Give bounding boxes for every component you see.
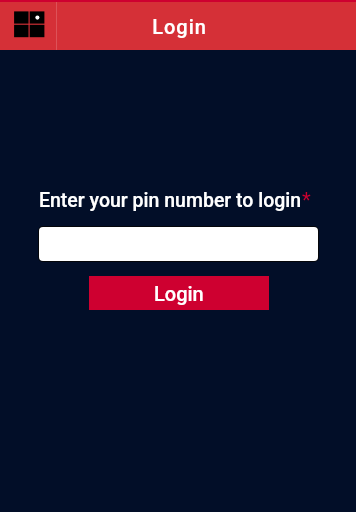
button[interactable]: Pin number input field xyxy=(39,227,318,261)
staticText: Enter your pin number to login xyxy=(39,189,302,212)
staticText: Login xyxy=(154,282,204,305)
staticText: * xyxy=(302,189,311,212)
button[interactable]: Login xyxy=(89,276,269,310)
button[interactable]: Open navigation menu xyxy=(0,2,56,50)
staticText: Login xyxy=(152,15,207,38)
